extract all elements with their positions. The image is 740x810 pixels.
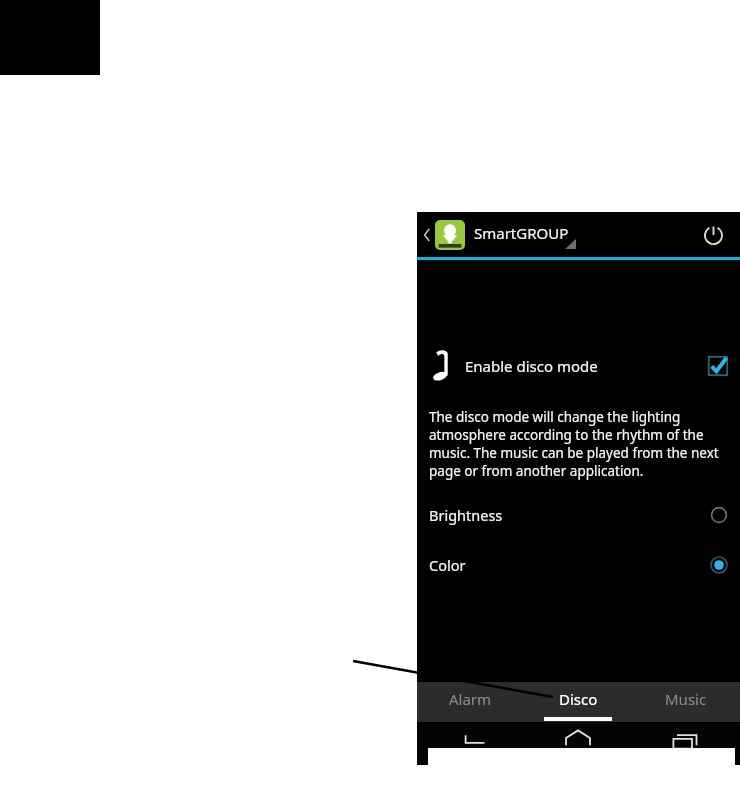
- button[interactable]: Alarm: [417, 682, 524, 722]
- staticText: Alarm: [449, 689, 492, 709]
- button[interactable]: Home: [524, 722, 632, 765]
- staticText: Color: [429, 555, 466, 575]
- button[interactable]: Brightness: [417, 500, 740, 530]
- staticText: SmartGROUP: [474, 223, 569, 243]
- button[interactable]: Recents: [632, 722, 740, 765]
- button[interactable]: Music: [632, 682, 740, 722]
- staticText: Enable disco mode: [465, 356, 708, 376]
- button[interactable]: Back: [417, 722, 524, 765]
- staticText: The disco mode will change the lighting …: [429, 408, 736, 480]
- button[interactable]: Awox app icon: [435, 220, 465, 250]
- button[interactable]: Disco: [524, 682, 632, 722]
- staticText: Disco: [559, 689, 598, 709]
- button[interactable]: Color: [417, 550, 740, 580]
- button[interactable]: Power: [696, 218, 730, 252]
- staticText: Music: [665, 689, 707, 709]
- staticText: Brightness: [429, 505, 503, 525]
- button[interactable]: Enable disco mode: [417, 342, 740, 390]
- button[interactable]: Back: [419, 212, 435, 257]
